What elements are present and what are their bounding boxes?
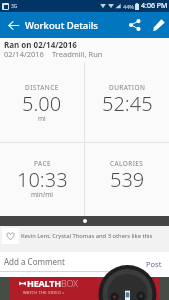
staticText: 3G [11,3,18,10]
button[interactable]: Like [2,228,19,244]
staticText: 539 [110,166,145,193]
staticText: Treadmill, Run [52,49,103,59]
staticText: Kevin Lent, Crystal Thomas and 3 others … [21,232,153,240]
staticText: mi [38,114,46,123]
button[interactable]: Back [0,12,26,38]
staticText: PACE [34,159,51,168]
button[interactable]: Add a Comment [0,256,131,281]
staticText: Add a Comment [4,256,65,267]
staticText: 44% [123,3,134,10]
staticText: CALORIES [110,159,144,168]
button[interactable]: Post [138,255,169,273]
staticText: 5.00 [22,90,62,117]
button[interactable]: CALORIES [85,143,169,216]
staticText: DISTANCE [25,83,59,92]
button[interactable]: Edit [147,12,169,38]
staticText: WATCH THE VIDEO » [23,290,65,295]
button[interactable]: PACE [0,143,84,216]
staticText: Ran on 02/14/2016 [4,39,77,50]
button[interactable]: Like [0,226,169,252]
staticText: 4:06 PM [141,1,168,11]
staticText: Workout Details [25,19,98,32]
button[interactable]: DURATION [85,63,169,142]
staticText: HEALTH [27,277,61,289]
staticText: 52:45 [102,90,153,117]
button[interactable]: Route map [0,216,169,226]
button[interactable]: DISTANCE [0,63,84,142]
button[interactable]: Share [123,12,147,38]
staticText: 02/14/2016 [4,49,44,59]
button[interactable]: Advertisement [0,277,169,300]
staticText: min/mi [31,190,53,199]
staticText: DURATION [109,83,146,92]
staticText: BOX [61,277,78,289]
staticText: Post [146,259,162,269]
staticText: 10:33 [17,166,68,193]
